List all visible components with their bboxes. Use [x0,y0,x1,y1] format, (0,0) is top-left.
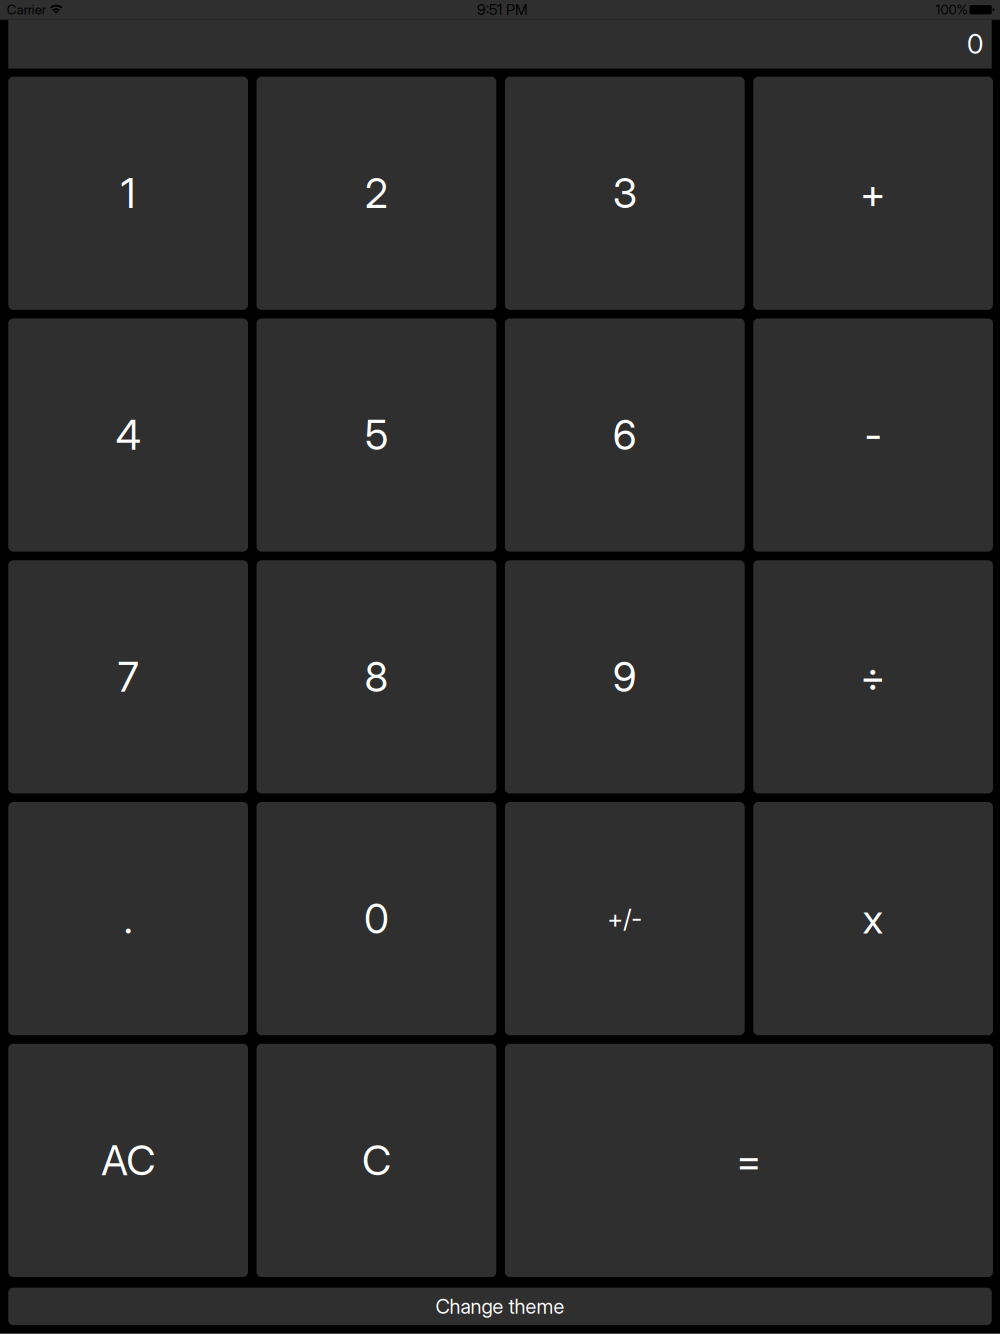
staticText: 3 [613,169,637,218]
staticText: 6 [613,410,637,460]
button[interactable]: Add [753,77,993,310]
staticText: 8 [364,652,388,701]
staticText: + [860,169,886,218]
button[interactable]: All clear [8,1044,248,1277]
staticText: . [124,894,133,943]
button[interactable]: Equals [505,1044,993,1277]
button[interactable]: 2 [257,77,496,310]
button[interactable]: 9 [505,560,745,793]
button[interactable]: 0 [257,802,496,1035]
staticText: 0 [967,28,983,60]
button[interactable]: Clear [257,1044,496,1277]
button[interactable]: 1 [8,77,248,310]
button[interactable]: Change theme [8,1288,992,1325]
button[interactable]: Plus minus [505,802,745,1035]
staticText: 1 [121,169,136,218]
button[interactable]: Decimal point [8,802,248,1035]
button[interactable]: Multiply [753,802,993,1035]
staticText: 100% [935,2,967,18]
button[interactable]: Subtract [753,318,993,552]
button[interactable]: 5 [257,318,496,552]
button[interactable]: 4 [8,318,248,552]
staticText: 5 [365,410,388,460]
button[interactable]: 3 [505,77,745,310]
staticText: AC [101,1136,155,1185]
staticText: 0 [364,894,389,943]
button[interactable]: 6 [505,318,745,552]
staticText: 4 [116,410,141,460]
staticText: 2 [365,169,388,218]
staticText: +/- [607,903,642,934]
staticText: = [736,1136,762,1185]
staticText: - [865,410,882,460]
staticText: C [362,1136,391,1185]
staticText: Carrier [7,2,46,18]
staticText: Change theme [435,1294,564,1318]
staticText: ÷ [860,652,886,701]
staticText: 9:51 PM [477,1,528,18]
staticText: 7 [118,652,139,701]
button[interactable]: 8 [257,560,496,793]
button[interactable]: Divide [753,560,993,793]
button[interactable]: 7 [8,560,248,793]
staticText: 9 [613,652,637,701]
staticText: x [863,894,884,943]
